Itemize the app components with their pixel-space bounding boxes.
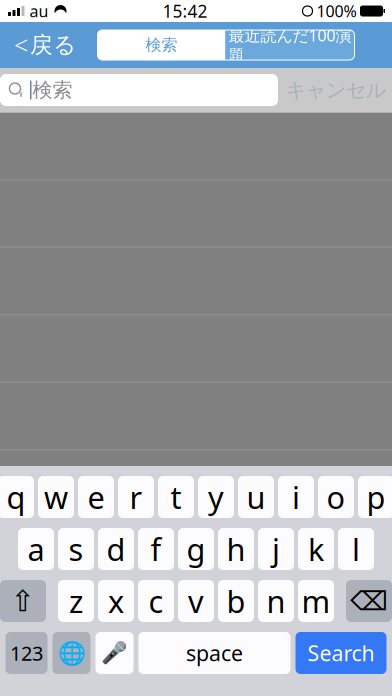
- staticText: r: [129, 477, 142, 517]
- staticText: v: [188, 581, 204, 621]
- button[interactable]: Next keyboard: [52, 632, 90, 674]
- button[interactable]: g: [178, 528, 214, 570]
- staticText: Search: [307, 639, 374, 667]
- button[interactable]: Shift: [0, 580, 46, 622]
- button[interactable]: q: [0, 476, 34, 518]
- button[interactable]: k: [298, 528, 334, 570]
- button[interactable]: x: [98, 580, 134, 622]
- staticText: b: [226, 581, 245, 621]
- button[interactable]: e: [78, 476, 114, 518]
- staticText: 検索: [32, 78, 72, 102]
- staticText: キャンセル: [286, 78, 386, 102]
- button[interactable]: s: [58, 528, 94, 570]
- button[interactable]: t: [158, 476, 194, 518]
- button[interactable]: d: [98, 528, 134, 570]
- button[interactable]: z: [58, 580, 94, 622]
- button[interactable]: h: [218, 528, 254, 570]
- button[interactable]: p: [358, 476, 392, 518]
- staticText: s: [68, 529, 83, 569]
- button[interactable]: 検索: [97, 30, 225, 60]
- button[interactable]: Delete: [346, 580, 392, 622]
- staticText: t: [170, 477, 181, 517]
- button[interactable]: f: [138, 528, 174, 570]
- staticText: l: [352, 529, 360, 569]
- staticText: f: [150, 529, 161, 569]
- button[interactable]: r: [118, 476, 154, 518]
- button[interactable]: v: [178, 580, 214, 622]
- staticText: n: [266, 581, 285, 621]
- staticText: 15:42: [162, 0, 207, 22]
- staticText: e: [87, 477, 104, 517]
- staticText: q: [6, 477, 25, 517]
- staticText: ⇧: [10, 584, 35, 618]
- staticText: 戻る: [30, 31, 76, 59]
- button[interactable]: c: [138, 580, 174, 622]
- staticText: space: [186, 639, 243, 667]
- staticText: a: [27, 529, 44, 569]
- staticText: 検索: [145, 35, 177, 55]
- staticText: o: [326, 477, 345, 517]
- staticText: ⌫: [350, 586, 388, 616]
- button[interactable]: キャンセル: [278, 68, 392, 112]
- button[interactable]: m: [298, 580, 334, 622]
- button[interactable]: w: [38, 476, 74, 518]
- staticText: u: [246, 477, 265, 517]
- staticText: x: [108, 581, 124, 621]
- button[interactable]: <: [0, 22, 76, 68]
- staticText: i: [292, 477, 300, 517]
- button[interactable]: l: [338, 528, 374, 570]
- button[interactable]: j: [258, 528, 294, 570]
- staticText: w: [44, 477, 68, 517]
- staticText: z: [69, 581, 83, 621]
- staticText: 123: [10, 640, 43, 666]
- button[interactable]: Search: [295, 632, 386, 674]
- staticText: c: [148, 581, 163, 621]
- button[interactable]: u: [238, 476, 274, 518]
- staticText: p: [366, 477, 385, 517]
- staticText: <: [14, 28, 28, 62]
- button[interactable]: a: [18, 528, 54, 570]
- staticText: d: [106, 529, 125, 569]
- button[interactable]: 123: [5, 632, 47, 674]
- staticText: 最近読んだ100演題: [228, 24, 351, 65]
- staticText: k: [308, 529, 324, 569]
- staticText: 100%: [316, 0, 356, 22]
- button[interactable]: o: [318, 476, 354, 518]
- staticText: au: [29, 0, 48, 22]
- button[interactable]: y: [198, 476, 234, 518]
- button[interactable]: i: [278, 476, 314, 518]
- staticText: 🎤: [101, 641, 128, 665]
- button[interactable]: Dictation: [95, 632, 133, 674]
- button[interactable]: b: [218, 580, 254, 622]
- staticText: 🌐: [57, 640, 85, 666]
- button[interactable]: space: [138, 632, 290, 674]
- button[interactable]: 最近読んだ100演題: [225, 30, 354, 60]
- staticText: g: [186, 529, 205, 569]
- staticText: y: [208, 477, 224, 517]
- button[interactable]: n: [258, 580, 294, 622]
- staticText: h: [226, 529, 245, 569]
- staticText: m: [301, 581, 330, 621]
- staticText: j: [272, 529, 280, 569]
